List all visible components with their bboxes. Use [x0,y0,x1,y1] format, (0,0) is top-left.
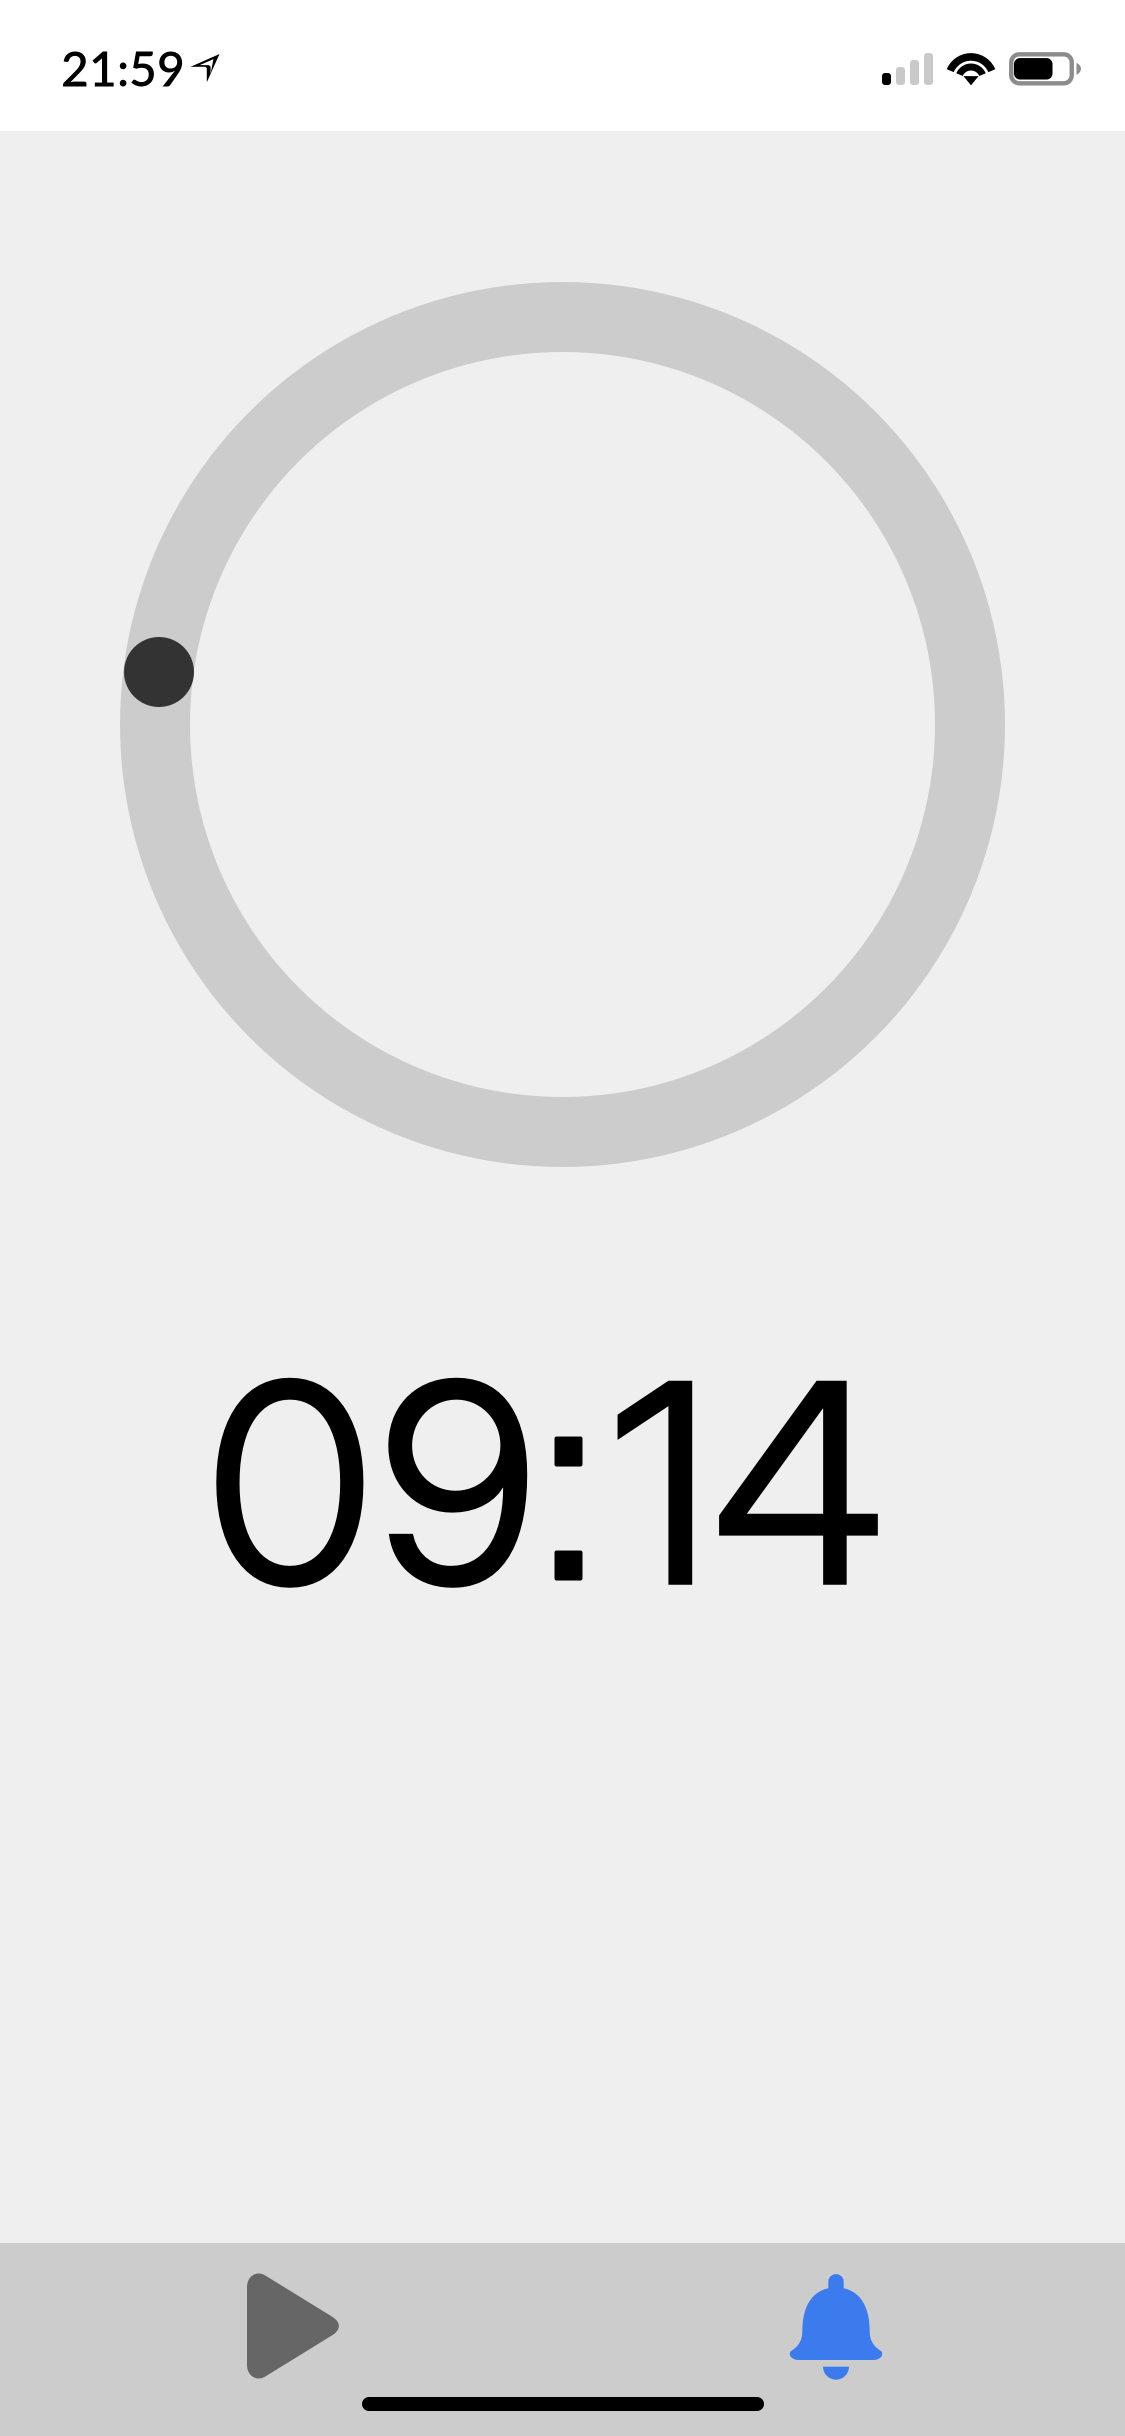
button[interactable]: Alerts [695,2254,976,2401]
staticText: 14 [611,1314,885,1652]
button[interactable]: Set duration [104,617,214,727]
staticText: 09 [204,1314,540,1652]
staticText: 21:59 [61,39,185,97]
button[interactable]: Start timer [151,2252,432,2399]
